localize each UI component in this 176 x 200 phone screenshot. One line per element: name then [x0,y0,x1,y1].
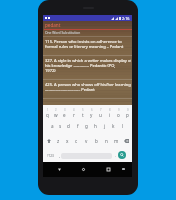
button[interactable]: a [48,120,56,131]
staticText: z [57,138,60,144]
button[interactable]: pedant [45,22,61,28]
staticText: d [67,123,70,129]
button[interactable]: 1 [43,107,51,119]
staticText: k [112,123,115,129]
staticText: c [75,138,78,144]
button[interactable]: 115. Person who insists on adherence to … [43,37,132,56]
button[interactable]: k [109,120,118,131]
button[interactable]: 327. A style in which a writer makes dis… [43,56,132,80]
button[interactable]: Search [118,151,126,159]
button[interactable]: x [63,135,72,146]
button[interactable]: , [57,150,62,161]
button[interactable]: v [81,135,91,146]
staticText: p [126,112,129,118]
button[interactable]: Home [78,164,88,174]
staticText: 5 [82,108,84,112]
button[interactable]: 3 [60,107,69,119]
staticText: s [59,123,62,129]
staticText: m [114,138,119,144]
staticText: 9 [118,108,120,112]
staticText: ?123 [47,154,54,158]
button[interactable]: 4 [69,107,78,119]
staticText: v [85,138,88,144]
button[interactable]: l [118,120,127,131]
staticText: l [122,123,124,129]
button[interactable]: . [113,150,118,161]
staticText: w [54,112,58,118]
staticText: 2 [55,108,57,112]
staticText: 2:16 [122,16,130,21]
button[interactable]: Recents [103,164,113,174]
staticText: y [90,112,93,118]
staticText: One Word Substitution [45,30,81,34]
button[interactable]: Hide keyboard [118,164,128,174]
staticText: b [95,138,98,144]
button[interactable]: z [54,135,63,146]
button[interactable]: g [82,120,91,131]
staticText: 425. A person who shows off his/her lear… [45,82,131,92]
staticText: 3 [64,108,66,112]
staticText: 4 [73,108,75,112]
button[interactable]: j [100,120,109,131]
staticText: . [115,153,117,159]
button[interactable]: f [73,120,82,131]
staticText: o [117,112,120,118]
button[interactable]: 425. A person who shows off his/her lear… [43,80,132,99]
staticText: q [46,112,49,118]
button[interactable]: s [56,120,64,131]
button[interactable]: Backspace [121,135,132,146]
staticText: e [63,112,66,118]
staticText: t [82,112,84,118]
button[interactable]: 6 [87,107,96,119]
staticText: i [109,112,111,118]
staticText: r [73,112,75,118]
button[interactable]: 2 [51,107,60,119]
staticText: j [104,123,106,129]
button[interactable]: h [91,120,100,131]
button[interactable]: 8 [105,107,114,119]
button[interactable]: b [91,135,101,146]
button[interactable]: ?123 [44,150,57,161]
staticText: f [77,123,79,129]
staticText: 0 [127,108,129,112]
staticText: 327. A style in which a writer makes dis… [45,58,131,73]
staticText: 1 [47,108,49,112]
button[interactable]: n [101,135,111,146]
button[interactable]: Back [54,164,64,174]
button[interactable]: d [64,120,73,131]
staticText: x [66,138,69,144]
button[interactable]: 9 [114,107,123,119]
staticText: , [59,153,61,159]
button[interactable]: c [72,135,81,146]
staticText: pedant [45,22,61,28]
button[interactable]: Shift [43,135,54,146]
button[interactable]: 7 [96,107,105,119]
staticText: 7 [100,108,102,112]
staticText: u [99,112,102,118]
staticText: h [94,123,97,129]
staticText: g [85,123,88,129]
button[interactable]: 5 [78,107,87,119]
staticText: a [51,123,54,129]
staticText: n [105,138,108,144]
staticText: 115. Person who insists on adherence to … [45,39,124,49]
button[interactable]: m [111,135,121,146]
staticText: 6 [91,108,93,112]
button[interactable]: 0 [123,107,132,119]
staticText: 8 [109,108,111,112]
